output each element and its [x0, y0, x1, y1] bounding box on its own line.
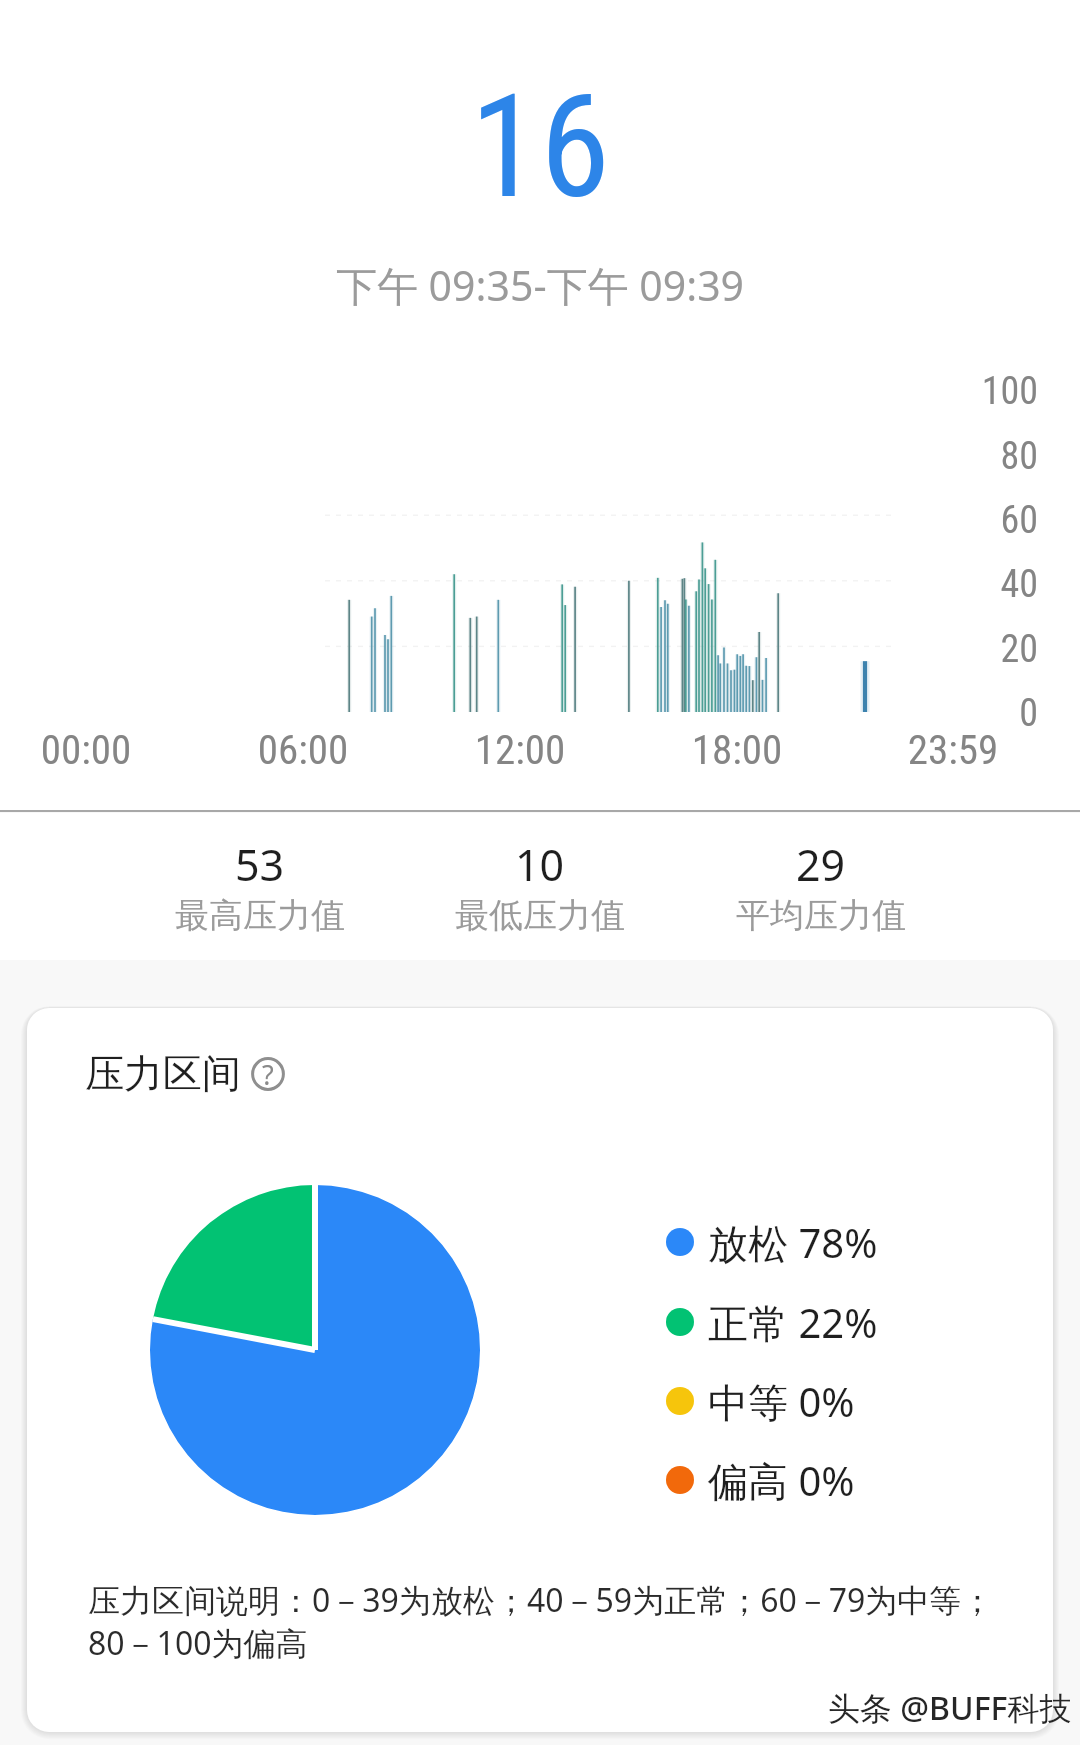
staticText: ? — [262, 1056, 274, 1090]
staticText: 80 — [0, 434, 1038, 479]
staticText: 20 — [0, 627, 1038, 672]
staticText: 00:00 — [0, 726, 186, 774]
other: Help — [251, 1057, 285, 1091]
staticText: 偏高 0% — [708, 1453, 855, 1508]
staticText: 40 — [0, 562, 1038, 607]
staticText: 10 — [515, 835, 565, 894]
staticText: 下午 09:35-下午 09:39 — [0, 257, 1080, 313]
staticText: 正常 22% — [708, 1295, 878, 1350]
staticText: 最高压力值 — [175, 894, 345, 937]
staticText: 100 — [0, 369, 1038, 414]
button[interactable]: 10 — [400, 813, 680, 960]
button[interactable]: 偏高 0% — [639, 1446, 989, 1514]
staticText: 平均压力值 — [736, 894, 906, 937]
staticText: 放松 78% — [708, 1215, 878, 1270]
button[interactable]: 中等 0% — [639, 1367, 989, 1435]
staticText: 06:00 — [203, 726, 403, 774]
staticText: 60 — [0, 498, 1038, 543]
staticText: 中等 0% — [708, 1374, 855, 1429]
staticText: 头条 @BUFF科技 — [828, 1686, 1078, 1730]
staticText: 压力区间 — [85, 1049, 241, 1098]
button[interactable]: 53 — [120, 813, 400, 960]
button[interactable]: 正常 22% — [639, 1288, 989, 1356]
staticText: 16 — [0, 64, 1080, 230]
staticText: 29 — [796, 835, 846, 894]
staticText: 53 — [235, 835, 285, 894]
button[interactable]: 压力区间 — [85, 1049, 285, 1098]
staticText: 18:00 — [637, 726, 837, 774]
staticText: 23:59 — [853, 726, 1053, 774]
staticText: 压力区间说明：0－39为放松；40－59为正常；60－79为中等；80－100为… — [88, 1578, 1023, 1665]
staticText: 最低压力值 — [455, 894, 625, 937]
button[interactable]: 放松 78% — [639, 1208, 989, 1276]
staticText: 0 — [0, 691, 1038, 736]
staticText: 12:00 — [420, 726, 620, 774]
button[interactable]: 29 — [681, 813, 961, 960]
